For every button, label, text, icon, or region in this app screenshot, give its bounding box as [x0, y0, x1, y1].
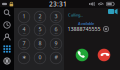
button[interactable]: 2: [32, 11, 47, 23]
button[interactable]: Contacts: [0, 31, 14, 43]
button[interactable]: #: [48, 52, 63, 64]
button[interactable]: Recents: [0, 19, 14, 31]
staticText: #: [54, 54, 57, 61]
staticText: DEF: [54, 20, 57, 21]
button[interactable]: 1: [16, 11, 31, 23]
staticText: Available: [78, 21, 94, 26]
button[interactable]: Keypad: [0, 43, 14, 55]
staticText: PQRS: [22, 47, 26, 48]
button[interactable]: 8: [32, 38, 47, 50]
staticText: 4: [22, 26, 25, 33]
button[interactable]: 3: [48, 11, 63, 23]
staticText: WXYZ: [54, 47, 58, 48]
staticText: 6: [54, 26, 57, 33]
staticText: 3: [54, 13, 57, 20]
staticText: 0: [38, 54, 41, 61]
button[interactable]: 4: [16, 24, 31, 36]
staticText: 2: [38, 13, 41, 20]
button[interactable]: 7: [16, 38, 31, 50]
button[interactable]: Video call: [107, 7, 118, 16]
staticText: 13888745555: [67, 25, 100, 33]
staticText: 1: [22, 13, 25, 20]
button[interactable]: End call: [97, 48, 111, 62]
button[interactable]: 9: [48, 38, 63, 50]
button[interactable]: 0: [32, 52, 47, 64]
button[interactable]: Settings: [0, 55, 14, 67]
staticText: ∗: [22, 54, 26, 60]
staticText: 9: [54, 40, 57, 47]
button[interactable]: Search: [0, 7, 14, 19]
staticText: 5: [38, 26, 41, 33]
button[interactable]: Call: [75, 48, 89, 62]
staticText: 23:31: [49, 0, 67, 8]
staticText: 8: [38, 40, 41, 47]
button[interactable]: Delete: [103, 26, 109, 32]
staticText: TUV: [38, 47, 41, 48]
staticText: ABC: [38, 20, 41, 21]
staticText: Calling...: [68, 12, 83, 18]
staticText: MNO: [54, 33, 57, 34]
button[interactable]: 5: [32, 24, 47, 36]
button[interactable]: 6: [48, 24, 63, 36]
button[interactable]: ∗: [16, 52, 31, 64]
staticText: 7: [22, 40, 25, 47]
staticText: JKL: [39, 33, 41, 34]
